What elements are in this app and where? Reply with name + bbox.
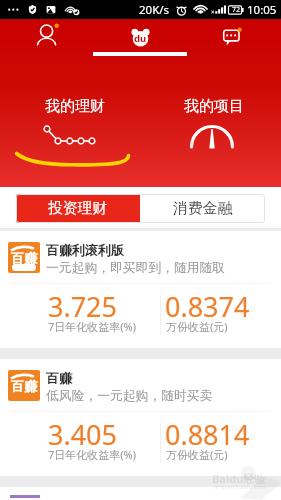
staticText: 7日年化收益率(%): [48, 447, 137, 462]
staticText: 72: [232, 5, 241, 15]
staticText: 7日年化收益率(%): [48, 319, 137, 334]
staticText: 百赚: [46, 370, 72, 386]
button[interactable]: 我的理财: [5, 81, 145, 151]
staticText: 百赚: [11, 378, 37, 394]
button[interactable]: Baidu home: [131, 28, 150, 47]
staticText: 3.725: [48, 288, 118, 325]
button[interactable]: 消费金融: [140, 194, 265, 223]
staticText: 我的项目: [184, 97, 244, 116]
staticText: 百赚: [11, 250, 37, 266]
button[interactable]: Account: [36, 23, 59, 46]
staticText: 低风险，一元起购，随时买卖: [46, 388, 213, 404]
staticText: du: [134, 32, 147, 45]
staticText: 20K/s: [139, 2, 170, 18]
staticText: 万份收益(元): [166, 447, 228, 462]
staticText: 百赚利滚利版: [46, 242, 124, 258]
button[interactable]: 投资理财: [16, 194, 140, 223]
staticText: 0.8814: [165, 416, 250, 453]
staticText: 3.405: [48, 416, 118, 453]
button[interactable]: 百赚: [0, 231, 281, 348]
staticText: 投资理财: [48, 199, 108, 218]
button[interactable]: 我的项目: [144, 81, 281, 151]
staticText: 万份收益(元): [166, 319, 228, 334]
staticText: 0.8374: [165, 288, 250, 325]
staticText: jingyan.baidu.com: [214, 483, 266, 491]
staticText: 10:05: [247, 2, 277, 18]
staticText: Baidu经验: [212, 471, 266, 486]
button[interactable]: Messages: [223, 28, 242, 47]
staticText: 消费金融: [173, 199, 233, 218]
button[interactable]: 百赚: [0, 359, 281, 476]
staticText: 我的理财: [45, 97, 105, 116]
staticText: 一元起购，即买即到，随用随取: [46, 260, 226, 276]
